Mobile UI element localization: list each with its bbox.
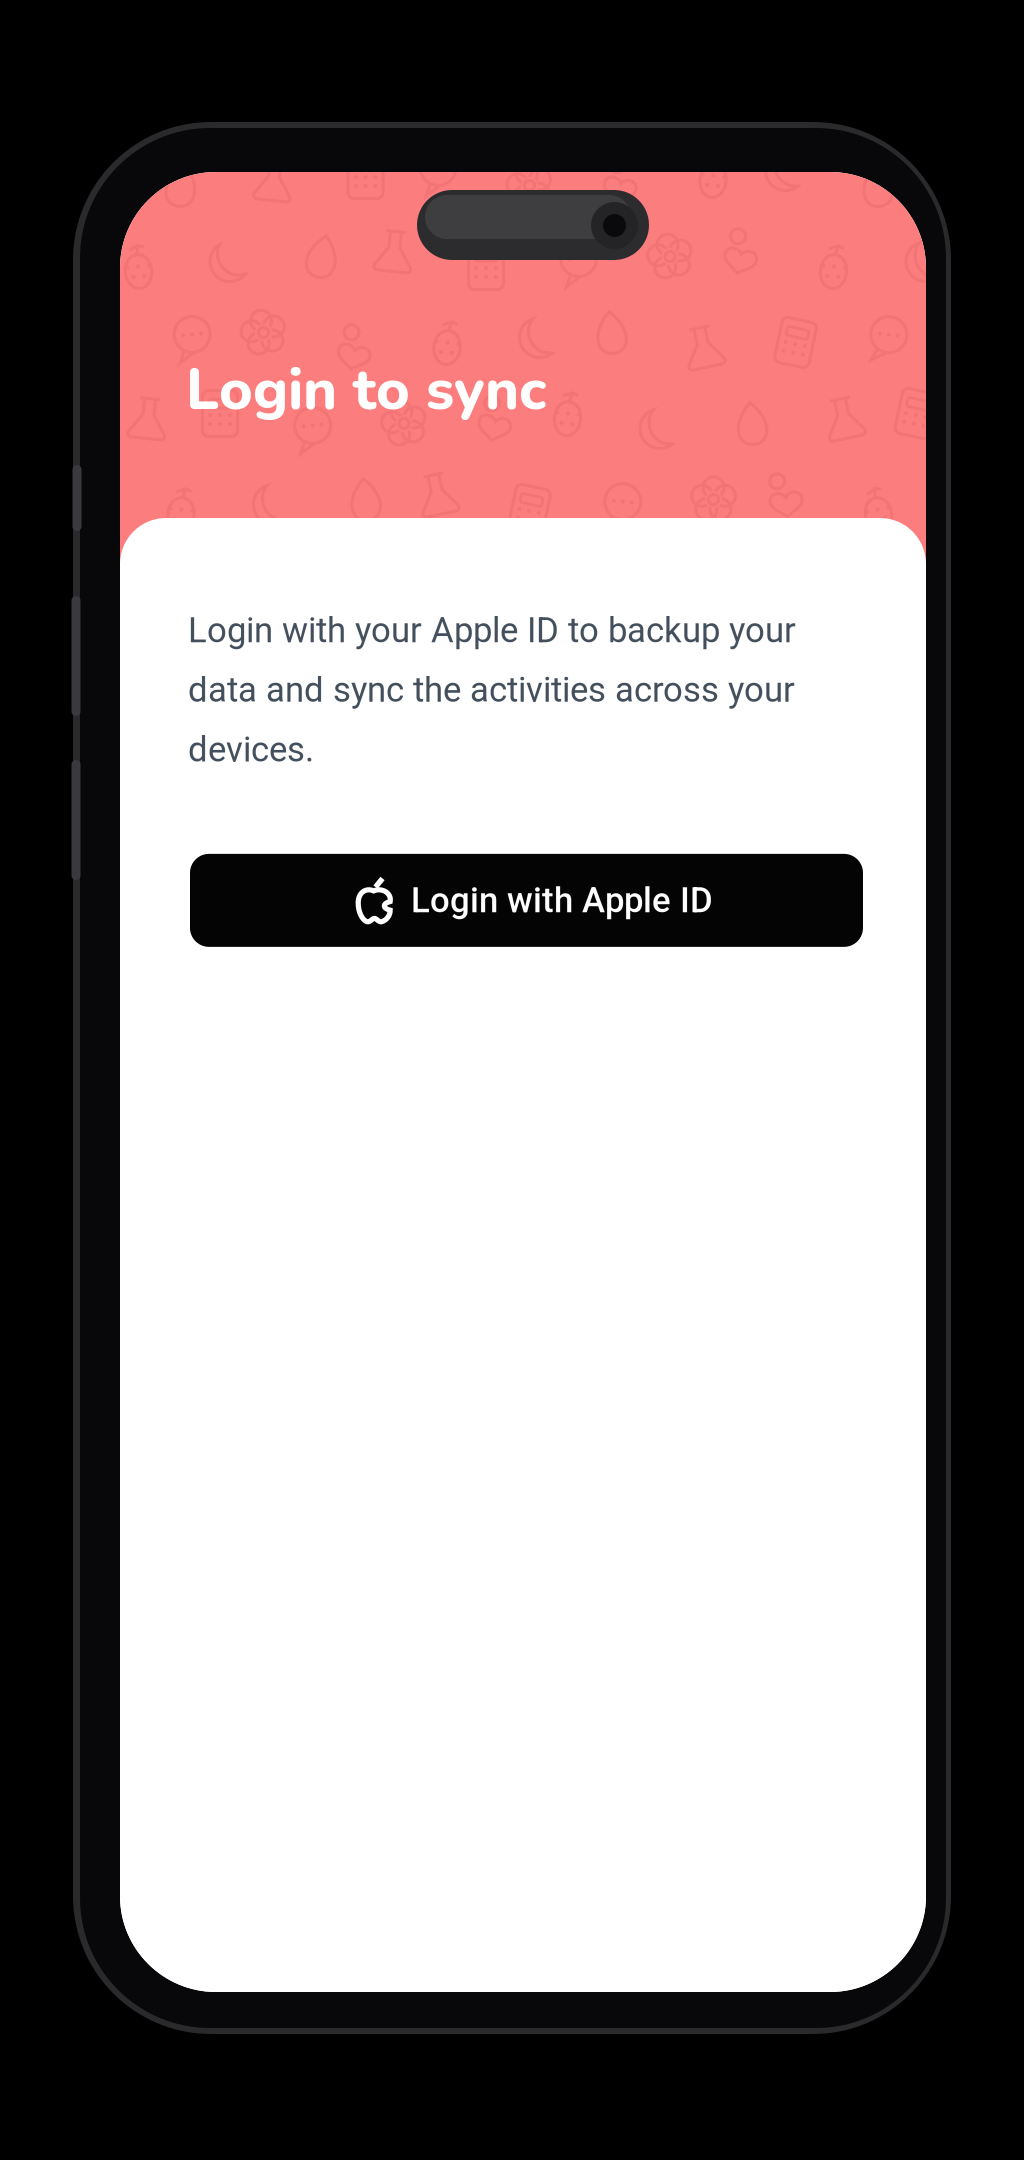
staticText: Login with your Apple ID to backup your … [188, 610, 796, 770]
staticText: Login with Apple ID [411, 880, 713, 921]
staticText: Login to sync [186, 351, 546, 429]
button[interactable]: Login with Apple ID [188, 854, 861, 947]
